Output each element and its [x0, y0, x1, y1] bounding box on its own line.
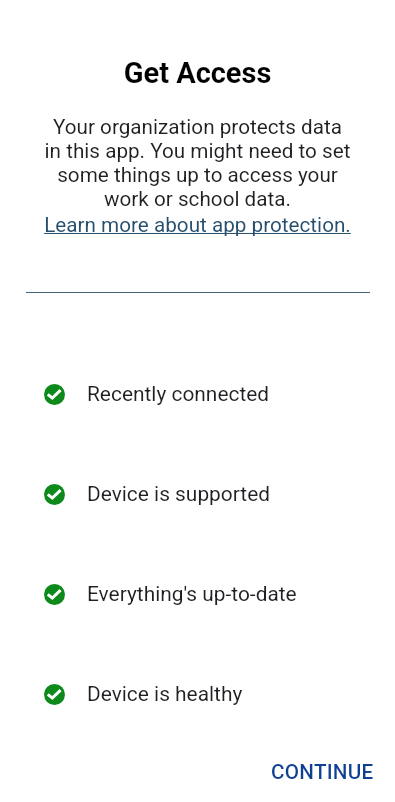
button[interactable]: Device is supported: [0, 444, 395, 544]
button[interactable]: CONTINUE: [271, 760, 374, 784]
button[interactable]: Recently connected: [0, 344, 395, 444]
staticText: Device is healthy: [87, 682, 243, 706]
staticText: Everything's up-to-date: [87, 582, 297, 606]
staticText: Recently connected: [87, 382, 270, 406]
button[interactable]: Everything's up-to-date: [0, 544, 395, 644]
staticText: Learn more about app protection.: [44, 213, 351, 237]
staticText: Your organization protects data in this …: [44, 115, 351, 211]
staticText: Get Access: [0, 56, 395, 90]
button[interactable]: Learn more about app protection.: [44, 213, 351, 237]
button[interactable]: Device is healthy: [0, 644, 395, 744]
staticText: Device is supported: [87, 482, 271, 506]
staticText: CONTINUE: [271, 760, 374, 784]
